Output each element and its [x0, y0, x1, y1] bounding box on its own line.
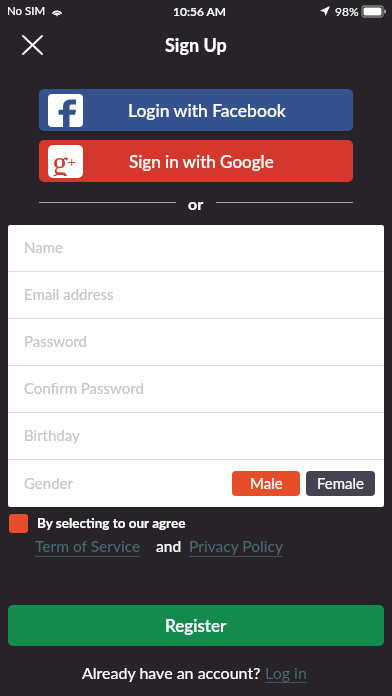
button[interactable]: Birthday	[8, 413, 384, 460]
button[interactable]: Password	[8, 319, 384, 366]
staticText: g	[52, 145, 69, 176]
staticText: Sign in with Google	[129, 151, 274, 171]
staticText: Birthday	[24, 426, 80, 444]
staticText: or	[188, 194, 204, 210]
staticText: +	[67, 150, 77, 173]
button[interactable]: Email address	[8, 272, 384, 319]
staticText: Female	[317, 474, 365, 492]
button[interactable]: Privacy Policy	[189, 537, 291, 556]
staticText: No SIM	[7, 4, 46, 18]
staticText: 10:56 AM	[173, 4, 226, 18]
staticText: Email address	[24, 285, 114, 303]
staticText: Already have an account?	[82, 663, 265, 682]
button[interactable]: Sign in with Google	[39, 140, 353, 182]
button[interactable]: Term of Service	[35, 537, 149, 556]
button[interactable]: Close	[16, 29, 48, 61]
staticText: Password	[24, 332, 87, 350]
staticText: Confirm Password	[24, 379, 144, 397]
button[interactable]: Register	[8, 605, 384, 646]
button[interactable]: Agree checkbox	[9, 514, 28, 533]
button[interactable]: Confirm Password	[8, 366, 384, 413]
button[interactable]: Log in	[265, 663, 311, 682]
staticText: Register	[165, 615, 227, 635]
staticText: Sign Up	[165, 34, 227, 56]
staticText: 98%	[335, 4, 359, 18]
staticText: Male	[250, 474, 283, 492]
button[interactable]: Name	[8, 225, 384, 272]
staticText: Privacy Policy	[189, 537, 291, 556]
button[interactable]: Male	[232, 471, 300, 496]
button[interactable]: Female	[306, 471, 375, 496]
staticText: Term of Service	[35, 537, 149, 556]
staticText: and	[156, 537, 182, 556]
staticText: Login with Facebook	[128, 100, 286, 121]
staticText: Gender	[24, 474, 73, 492]
staticText: Name	[24, 238, 63, 256]
staticText: Log in	[265, 663, 311, 682]
button[interactable]: Login with Facebook	[39, 89, 353, 131]
staticText: By selecting to our agree	[37, 515, 186, 531]
